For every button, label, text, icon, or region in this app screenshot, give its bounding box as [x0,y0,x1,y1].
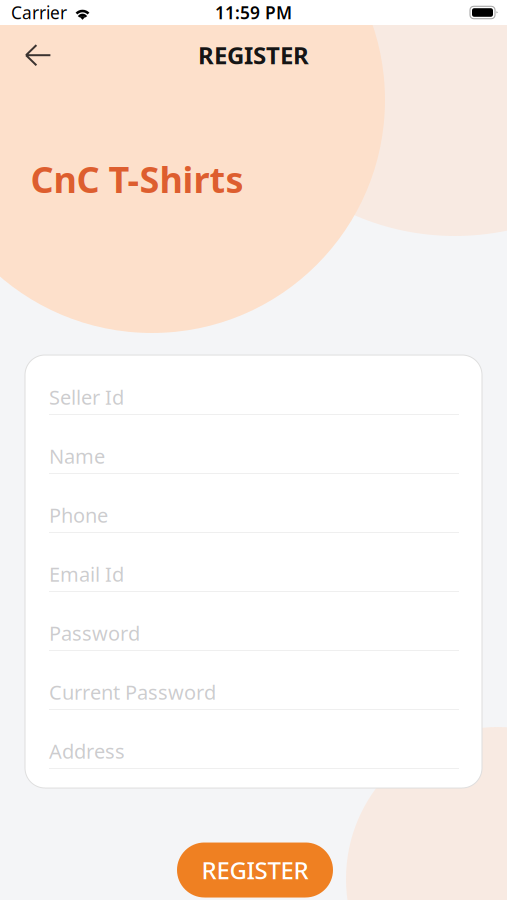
staticText: Carrier [11,1,67,24]
staticText: Seller Id [49,384,124,410]
button[interactable]: Back [12,31,64,79]
button[interactable]: Address [49,734,459,793]
button[interactable]: Name [49,439,459,498]
button[interactable]: Password [49,616,459,675]
staticText: Phone [49,502,108,528]
staticText: Name [49,443,105,469]
button[interactable]: Seller Id [49,380,459,439]
button[interactable]: Phone [49,498,459,557]
staticText: Current Password [49,679,216,705]
staticText: Email Id [49,561,124,587]
staticText: CnC T-Shirts [30,155,243,203]
staticText: 11:59 PM [215,1,292,24]
staticText: REGISTER [198,39,309,71]
staticText: Password [49,620,140,646]
staticText: Address [49,738,125,764]
button[interactable]: Email Id [49,557,459,616]
button[interactable]: Current Password [49,675,459,734]
staticText: REGISTER [201,854,308,886]
button[interactable]: REGISTER [177,842,333,897]
